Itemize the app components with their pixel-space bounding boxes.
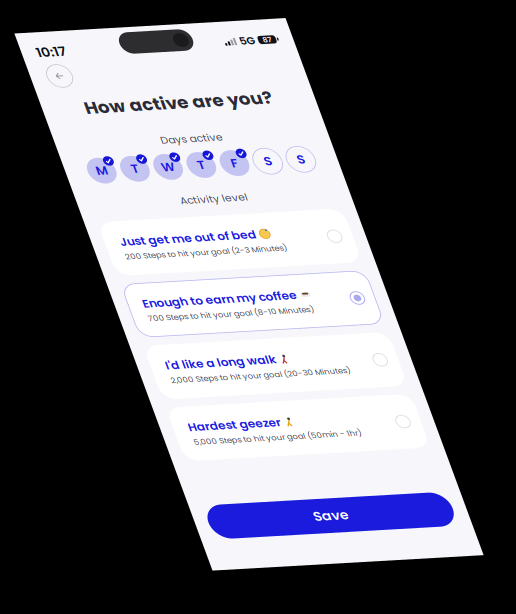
button[interactable]: F <box>221 197 269 245</box>
staticText: Enough to earn my coffee <box>40 419 263 444</box>
button[interactable]: Back <box>22 50 62 90</box>
staticText: Just get me out of bed <box>40 321 237 346</box>
button[interactable]: Enough to earn my coffee <box>19 399 373 483</box>
staticText: I'd like a long walk <box>40 517 200 542</box>
staticText: Days active <box>151 168 241 190</box>
button[interactable]: T <box>172 197 220 245</box>
staticText: 700 Steps to hit your goal (8-10 Minutes… <box>40 447 280 463</box>
staticText: Activity level <box>147 264 245 285</box>
button[interactable]: W <box>124 197 172 245</box>
button[interactable]: Just get me out of bed <box>19 301 373 385</box>
staticText: 2,000 Steps to hit your goal (20-30 Minu… <box>40 545 300 561</box>
staticText: How active are you? <box>60 104 332 140</box>
staticText: T <box>191 208 202 234</box>
button[interactable]: M <box>28 197 76 245</box>
button[interactable]: T <box>76 197 124 245</box>
staticText: 200 Steps to hit your goal (2-3 Minutes) <box>40 349 274 365</box>
staticText: W <box>139 208 158 234</box>
staticText: S <box>335 208 346 234</box>
button[interactable]: S <box>269 197 317 245</box>
staticText: F <box>240 208 250 234</box>
button[interactable]: S <box>317 197 365 245</box>
staticText: 10:17 <box>21 18 64 46</box>
button[interactable]: I'd like a long walk <box>19 497 373 581</box>
